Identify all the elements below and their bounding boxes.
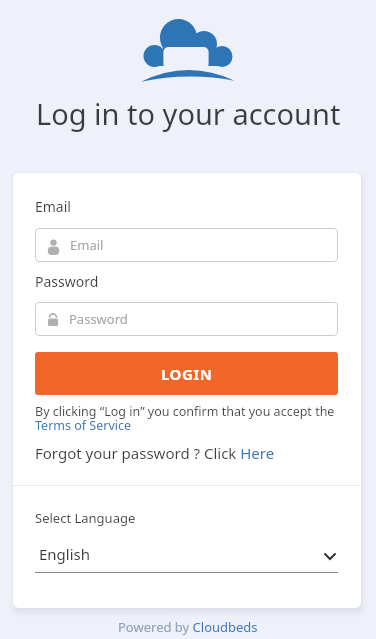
staticText: LOGIN	[161, 364, 213, 384]
staticText: Email	[35, 197, 71, 216]
button[interactable]: Email	[35, 228, 338, 262]
staticText: Email	[70, 236, 104, 254]
staticText: Terms of Service	[35, 417, 132, 434]
button[interactable]: Powered by Cloudbeds	[0, 618, 376, 636]
staticText: Powered by Cloudbeds	[118, 618, 258, 636]
staticText: Password	[69, 310, 128, 328]
staticText: Select Language	[35, 509, 136, 527]
staticText: Password	[35, 272, 99, 291]
staticText: English	[39, 544, 91, 564]
button[interactable]: Password	[35, 302, 338, 336]
button[interactable]: Terms of Service	[35, 417, 132, 434]
button[interactable]: English	[35, 544, 338, 572]
staticText: Forgot your password ? Click Here	[35, 443, 275, 463]
button[interactable]: LOGIN	[35, 352, 338, 395]
staticText: Log in to your account	[36, 94, 341, 133]
button[interactable]: Forgot your password ? Click Here	[35, 443, 275, 463]
staticText: By clicking “Log in” you confirm that yo…	[35, 403, 335, 420]
